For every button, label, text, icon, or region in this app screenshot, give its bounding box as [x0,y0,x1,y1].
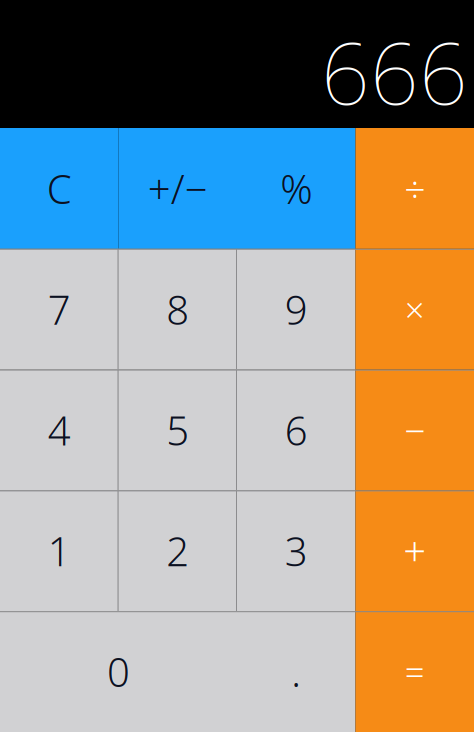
staticText: 2 [166,524,189,577]
button[interactable]: 2 [118,490,237,611]
button[interactable]: ÷ [355,128,474,249]
button[interactable]: 6 [237,370,355,490]
button[interactable]: 1 [0,490,118,611]
button[interactable]: 5 [118,370,237,490]
button[interactable]: 3 [237,490,355,611]
button[interactable]: − [355,370,474,490]
button[interactable]: 7 [0,249,118,370]
staticText: +/− [148,162,208,215]
button[interactable]: 4 [0,370,118,490]
staticText: C [47,162,72,215]
button[interactable]: 0 [0,611,237,732]
staticText: × [405,286,425,332]
button[interactable]: . [237,611,355,732]
staticText: ÷ [404,164,425,213]
button[interactable]: 9 [237,249,355,370]
staticText: % [280,162,312,215]
staticText: = [405,649,425,695]
staticText: 0 [107,645,130,698]
button[interactable]: + [355,490,474,611]
button[interactable]: × [355,249,474,370]
button[interactable]: 8 [118,249,237,370]
staticText: 7 [48,283,71,336]
staticText: . [291,645,301,698]
staticText: 6 [285,403,308,456]
button[interactable]: = [355,611,474,732]
button[interactable]: +/− [118,128,237,249]
staticText: 4 [48,403,71,456]
staticText: − [404,405,425,455]
staticText: 666 [321,15,468,128]
staticText: 3 [285,524,308,577]
staticText: 8 [166,283,189,336]
button[interactable]: C [0,128,118,249]
staticText: + [403,524,426,577]
staticText: 1 [48,524,71,577]
button[interactable]: % [237,128,355,249]
staticText: 5 [166,403,189,456]
staticText: 9 [285,283,308,336]
